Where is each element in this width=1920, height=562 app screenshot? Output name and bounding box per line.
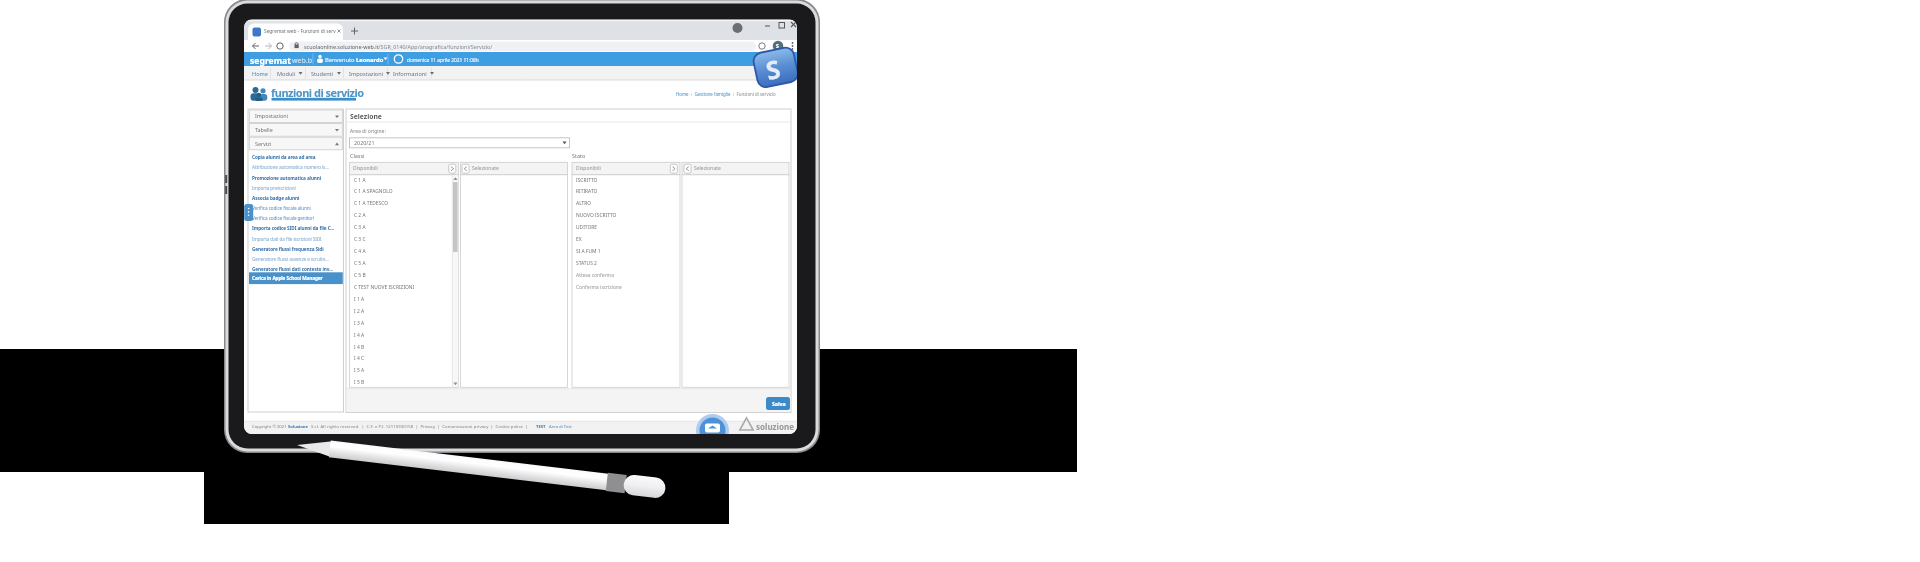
staticText: 2020/21 xyxy=(354,139,375,146)
button[interactable] xyxy=(313,52,388,66)
button[interactable] xyxy=(670,164,677,173)
button[interactable] xyxy=(249,194,343,204)
button[interactable] xyxy=(277,66,303,80)
button[interactable] xyxy=(684,164,691,173)
button[interactable] xyxy=(249,164,343,174)
button[interactable] xyxy=(449,164,456,173)
button[interactable] xyxy=(676,90,790,99)
button[interactable] xyxy=(249,225,343,235)
button[interactable] xyxy=(249,215,343,225)
staticText: Verifica codice fiscale alunni xyxy=(252,205,311,211)
staticText: Importa preiscrizioni xyxy=(252,185,296,191)
button[interactable] xyxy=(249,205,343,215)
staticText: C 2 A xyxy=(354,212,366,219)
staticText: domenica 11 aprile 2021 11:08h xyxy=(407,57,479,64)
staticText: C 3 C xyxy=(354,236,366,243)
staticText: Attesa conferma xyxy=(576,272,614,279)
staticText: Area di Test xyxy=(549,424,572,430)
staticText: Associa badge alunni xyxy=(252,195,300,201)
staticText: Leonardo xyxy=(356,56,384,64)
staticText: NUOVO ISCRITTO xyxy=(576,212,617,219)
button[interactable] xyxy=(350,138,570,148)
staticText: C 5 A xyxy=(354,260,366,267)
staticText: S xyxy=(776,43,779,50)
staticText: C 5 B xyxy=(354,272,366,279)
staticText: C 1 A TEDESCO xyxy=(354,200,389,207)
staticText: I 4 C xyxy=(354,355,365,362)
staticText: I 3 A xyxy=(354,320,365,327)
staticText: Attribuzione automatica numero is... xyxy=(252,164,329,170)
button[interactable] xyxy=(249,184,343,194)
staticText: C 1 A SPAGNOLO xyxy=(354,188,393,195)
staticText: Area di origine: xyxy=(350,128,386,135)
button[interactable] xyxy=(249,110,342,123)
staticText: ALTRO xyxy=(576,200,592,207)
staticText: SI A FUM 1 xyxy=(576,248,601,255)
button[interactable] xyxy=(696,414,729,434)
staticText: Stato xyxy=(572,152,586,159)
staticText: Verifica codice fiscale genitori xyxy=(252,215,315,221)
staticText: ISCRITTO xyxy=(576,177,598,184)
button[interactable] xyxy=(249,124,342,137)
button[interactable] xyxy=(311,66,341,80)
staticText: C TEST NUOVE ISCRIZIONI xyxy=(354,284,415,291)
button[interactable] xyxy=(249,235,343,245)
staticText: I 4 B xyxy=(354,344,365,351)
staticText: Generatore flussi frequenza Sidi xyxy=(252,246,324,252)
staticText: RITIRATO xyxy=(576,188,598,195)
staticText: Informazioni xyxy=(393,70,427,78)
button[interactable] xyxy=(349,66,385,80)
staticText: Impostazioni xyxy=(349,70,384,78)
button[interactable] xyxy=(536,422,561,430)
staticText: Conferma iscrizione xyxy=(576,284,622,291)
button[interactable] xyxy=(249,245,343,255)
button[interactable] xyxy=(289,42,756,52)
staticText: S xyxy=(763,51,783,87)
staticText: C 3 A xyxy=(354,224,366,231)
staticText: I 4 A xyxy=(354,332,365,339)
staticText: EX xyxy=(576,236,582,243)
button[interactable] xyxy=(462,164,469,173)
staticText: I 1 A xyxy=(354,296,365,303)
staticText: S.r.l. All rights reserved. | C.F. e P.I… xyxy=(311,424,528,430)
staticText: Studenti xyxy=(311,70,334,78)
staticText: Benvenuto xyxy=(325,56,355,64)
staticText: Carica in Apple School Manager xyxy=(252,275,323,281)
button[interactable] xyxy=(249,154,343,164)
button[interactable] xyxy=(249,255,343,265)
button[interactable] xyxy=(252,66,271,80)
staticText: Home xyxy=(252,70,268,78)
staticText: Segremat web - Funzioni di serv xyxy=(264,28,336,35)
staticText: Moduli xyxy=(277,70,296,78)
button[interactable] xyxy=(393,66,429,80)
staticText: scuolaonline.soluzione-web.it/SGR_0140/A… xyxy=(304,43,493,50)
staticText: C 4 A xyxy=(354,248,366,255)
staticText: Generatore flussi dati contesto inv... xyxy=(252,266,333,272)
staticText: Impostazioni xyxy=(255,112,288,119)
button[interactable] xyxy=(249,272,343,284)
button[interactable] xyxy=(248,24,343,41)
staticText: Promozione automatica alunni xyxy=(252,175,322,181)
staticText: segremat xyxy=(250,55,291,67)
staticText: Copyright © 2021 xyxy=(252,424,287,430)
staticText: Selezionate xyxy=(694,165,721,172)
button[interactable] xyxy=(766,397,790,410)
button[interactable] xyxy=(249,137,342,150)
staticText: Generatore flussi assenze e scrutin... xyxy=(252,256,329,262)
staticText: web.b xyxy=(292,56,312,66)
staticText: I 2 A xyxy=(354,308,365,315)
staticText: Disponibili xyxy=(353,165,378,172)
staticText: Home › Gestione famiglie › Funzioni di s… xyxy=(676,91,776,97)
staticText: soluzione xyxy=(756,421,794,432)
staticText: STATUS 2 xyxy=(576,260,597,267)
staticText: Selezione xyxy=(350,112,382,121)
staticText: Disponibili xyxy=(576,165,601,172)
button[interactable] xyxy=(249,265,343,275)
button[interactable] xyxy=(249,174,343,184)
staticText: Classi xyxy=(350,152,365,159)
staticText: I 5 B xyxy=(354,379,365,386)
staticText: Selezionate xyxy=(472,165,499,172)
staticText: C 1 A xyxy=(354,177,366,184)
staticText: funzioni di servizio xyxy=(271,85,364,100)
staticText: UDITORE xyxy=(576,224,598,231)
